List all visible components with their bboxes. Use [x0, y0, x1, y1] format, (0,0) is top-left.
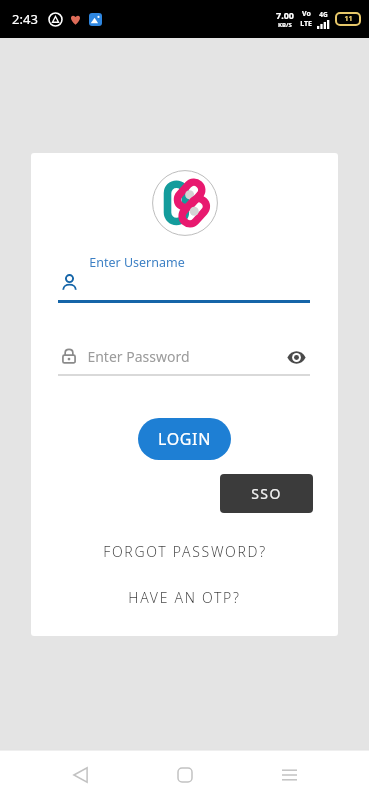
staticText: 2:43 — [12, 10, 38, 28]
button[interactable]: Home — [161, 751, 209, 799]
button[interactable]: Back — [56, 751, 104, 799]
staticText: FORGOT PASSWORD? — [103, 542, 267, 561]
staticText: SSO — [251, 484, 282, 503]
staticText: 11 — [344, 14, 353, 24]
staticText: Vo — [302, 9, 311, 19]
button[interactable]: LOGIN — [138, 418, 231, 460]
staticText: Enter Password — [87, 347, 190, 366]
staticText: LTE — [300, 19, 312, 29]
button[interactable]: HAVE AN OTP? — [31, 581, 338, 613]
staticText: LOGIN — [158, 428, 211, 450]
staticText: HAVE AN OTP? — [128, 588, 241, 607]
staticText: 4G — [319, 10, 328, 19]
button[interactable] — [58, 271, 310, 301]
staticText: Enter Username — [89, 254, 185, 271]
button[interactable]: Recents — [265, 751, 313, 799]
button[interactable]: Show password — [282, 343, 310, 371]
staticText: KB/S — [278, 21, 292, 29]
staticText: 7.00 — [276, 9, 294, 21]
button[interactable]: FORGOT PASSWORD? — [31, 535, 338, 567]
button[interactable]: Enter Password — [58, 344, 310, 372]
button[interactable]: SSO — [220, 474, 313, 513]
